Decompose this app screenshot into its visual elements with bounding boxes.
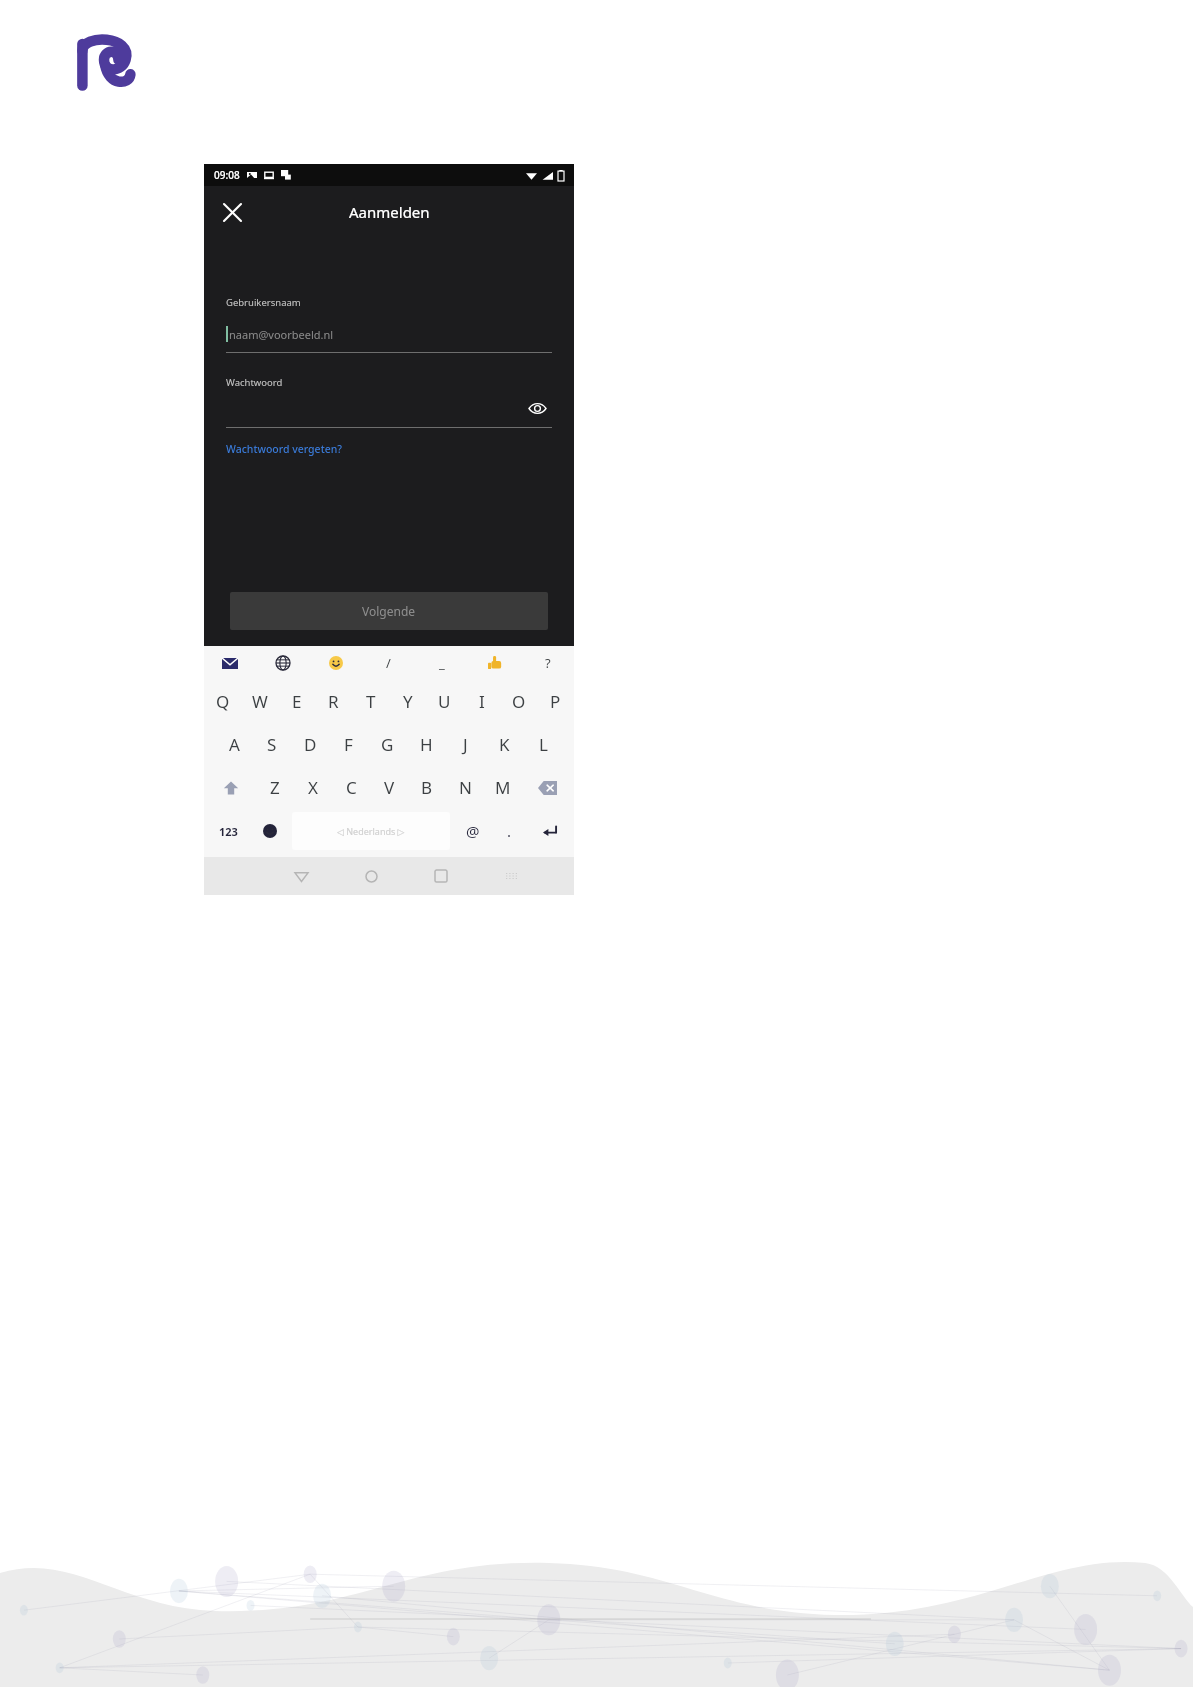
button[interactable]: Emoji [250, 809, 289, 853]
staticText: H [420, 733, 433, 756]
staticText: ◁ Nederlands ▷ [337, 825, 405, 837]
button[interactable]: S [253, 723, 291, 766]
button[interactable]: D [291, 723, 329, 766]
staticText: V [384, 776, 395, 799]
button[interactable]: C [332, 766, 370, 809]
staticText: Gebruikersnaam [226, 296, 301, 309]
button[interactable]: J [446, 723, 485, 766]
staticText: O [512, 690, 526, 713]
button[interactable]: Wachtwoord vergeten? [226, 442, 342, 456]
button[interactable]: F [329, 723, 368, 766]
staticText: ? [545, 654, 551, 672]
button[interactable]: P [537, 680, 574, 723]
button[interactable]: G [368, 723, 407, 766]
button[interactable]: R [315, 680, 352, 723]
staticText: 123 [219, 824, 238, 839]
button[interactable]: / [362, 646, 415, 680]
staticText: R [328, 690, 339, 713]
button[interactable] [468, 646, 521, 680]
staticText: J [463, 733, 468, 756]
button[interactable]: Terug [266, 857, 336, 895]
staticText: S [267, 733, 277, 756]
staticText: P [550, 690, 561, 713]
staticText: F [344, 733, 353, 756]
button[interactable]: ◁ Nederlands ▷ [292, 812, 450, 850]
button[interactable]: Volgende [230, 592, 548, 630]
staticText: . [507, 821, 512, 841]
button[interactable]: N [446, 766, 484, 809]
button[interactable] [204, 646, 256, 680]
button[interactable]: A [215, 723, 253, 766]
button[interactable]: O [500, 680, 537, 723]
button[interactable]: ? [521, 646, 574, 680]
staticText: T [366, 690, 376, 713]
button[interactable]: Y [389, 680, 426, 723]
button[interactable]: H [407, 723, 446, 766]
button[interactable] [256, 646, 309, 680]
staticText: G [381, 733, 394, 756]
button[interactable]: Q [204, 680, 241, 723]
staticText: X [308, 776, 318, 799]
button[interactable]: T [352, 680, 389, 723]
button[interactable]: I [463, 680, 500, 723]
staticText: M [495, 776, 511, 799]
staticText: C [346, 776, 357, 799]
staticText: B [421, 776, 433, 799]
button[interactable]: naam@voorbeeld.nl [226, 323, 552, 345]
button[interactable]: M [484, 766, 522, 809]
staticText: Aanmelden [349, 202, 430, 222]
button[interactable]: Shift [206, 766, 256, 809]
button[interactable]: V [370, 766, 408, 809]
staticText: / [386, 654, 391, 672]
button[interactable]: Z [256, 766, 294, 809]
button[interactable]: U [426, 680, 463, 723]
staticText: W [252, 690, 268, 713]
button[interactable]: E [278, 680, 315, 723]
button[interactable]: @ [453, 809, 492, 853]
button[interactable]: X [294, 766, 332, 809]
staticText: U [438, 690, 451, 713]
staticText: 09:08 [214, 168, 240, 182]
button[interactable]: Sluiten [212, 192, 252, 232]
staticText: Wachtwoord [226, 376, 283, 389]
button[interactable]: _ [415, 646, 468, 680]
staticText: Q [216, 690, 230, 713]
staticText: E [292, 690, 302, 713]
staticText: I [479, 690, 485, 713]
staticText: Z [270, 776, 280, 799]
staticText: L [539, 733, 548, 756]
staticText: A [229, 733, 240, 756]
button[interactable] [309, 646, 362, 680]
staticText: @ [466, 821, 480, 841]
staticText: Volgende [362, 603, 416, 619]
button[interactable]: Enter [527, 809, 572, 853]
staticText: N [459, 776, 472, 799]
staticText: naam@voorbeeld.nl [229, 327, 334, 342]
button[interactable]: Wachtwoord tonen [522, 393, 552, 423]
button[interactable]: Start [336, 857, 406, 895]
button[interactable]: Backspace [522, 766, 572, 809]
button[interactable]: B [408, 766, 446, 809]
button[interactable]: Recente apps [406, 857, 476, 895]
button[interactable]: . [492, 809, 527, 853]
button[interactable]: 123 [206, 809, 250, 853]
staticText: Y [403, 690, 413, 713]
button[interactable]: W [241, 680, 278, 723]
staticText: _ [439, 654, 445, 672]
staticText: K [499, 733, 510, 756]
staticText: D [304, 733, 317, 756]
button[interactable]: L [524, 723, 563, 766]
staticText: Wachtwoord vergeten? [226, 442, 342, 456]
button[interactable]: K [485, 723, 524, 766]
